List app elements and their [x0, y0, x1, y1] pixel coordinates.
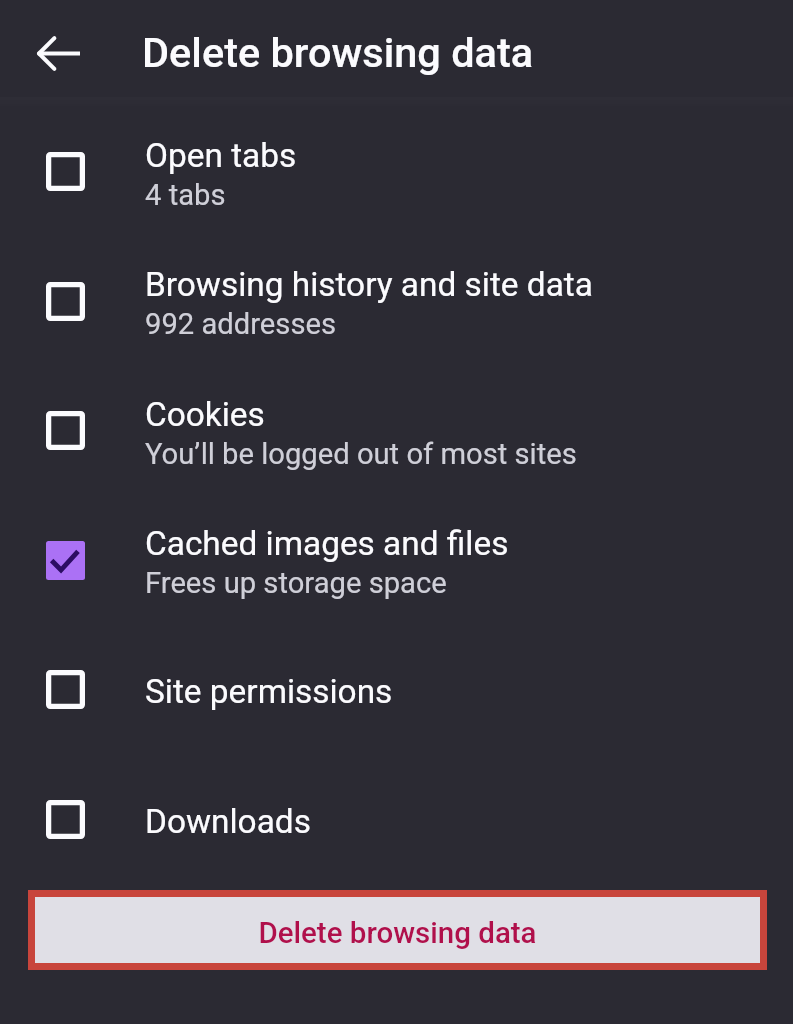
staticText: 992 addresses: [145, 307, 337, 341]
staticText: Site permissions: [145, 672, 393, 711]
button[interactable]: Open tabs: [0, 107, 793, 236]
staticText: Cookies: [145, 395, 265, 434]
staticText: Delete browsing data: [258, 916, 537, 951]
staticText: Downloads: [145, 802, 311, 841]
staticText: Open tabs: [145, 136, 297, 175]
staticText: 4 tabs: [145, 178, 226, 212]
staticText: Delete browsing data: [142, 28, 534, 77]
button[interactable]: Site permissions: [0, 625, 793, 754]
button[interactable]: Cached images and files: [0, 495, 793, 625]
button[interactable]: Navigate up: [24, 18, 94, 88]
button[interactable]: Cookies: [0, 366, 793, 495]
staticText: Browsing history and site data: [145, 265, 593, 304]
staticText: Frees up storage space: [145, 566, 447, 600]
staticText: Cached images and files: [145, 524, 509, 563]
button[interactable]: Browsing history and site data: [0, 236, 793, 366]
staticText: You’ll be logged out of most sites: [145, 437, 577, 471]
button[interactable]: Downloads: [0, 754, 793, 884]
button[interactable]: Delete browsing data: [35, 897, 760, 963]
